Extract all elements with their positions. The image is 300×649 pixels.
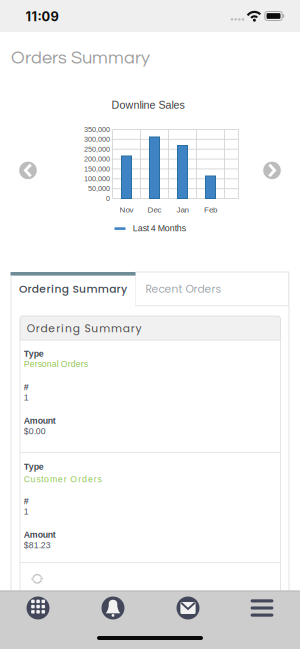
button[interactable]: Messages [176,596,200,620]
staticText: Recent Orders [145,281,221,296]
staticText: 300,000 [84,135,110,143]
staticText: 1 [24,393,29,402]
staticText: Ordering Summary [19,281,127,296]
staticText: 350,000 [84,125,110,133]
staticText: 100,000 [84,175,110,183]
staticText: Nov [119,205,133,214]
staticText: Feb [204,205,217,214]
staticText: Dec [147,205,161,214]
staticText: Customer Orders [24,474,102,484]
staticText: 250,000 [84,145,110,153]
staticText: Type [24,349,44,358]
staticText: 1 [24,507,29,516]
staticText: 200,000 [84,155,110,163]
button[interactable]: Refresh [27,569,47,589]
button[interactable]: Ordering Summary [10,272,135,306]
staticText: $0.00 [24,426,46,436]
staticText: # [24,382,29,392]
staticText: Amount [24,416,56,426]
staticText: Ordering Summary [27,321,141,336]
staticText: 11:09 [25,9,58,24]
staticText: Last 4 Months [133,223,186,233]
staticText: $81.23 [24,540,51,550]
staticText: Amount [24,530,56,540]
staticText: Type [24,462,44,472]
staticText: Downline Sales [111,99,184,111]
staticText: 50,000 [88,185,110,193]
button[interactable]: Previous [19,162,37,179]
staticText: # [24,496,29,506]
staticText: 0 [106,194,110,202]
staticText: Jan [176,205,188,214]
button[interactable]: Menu [250,596,274,620]
staticText: 150,000 [84,165,110,173]
button[interactable]: Notifications [101,596,125,620]
button[interactable]: Dashboard [26,596,50,620]
staticText: Personal Orders [24,359,88,369]
staticText: Orders Summary [11,49,150,67]
button[interactable]: Next [263,162,281,179]
button[interactable]: Recent Orders [125,272,299,306]
